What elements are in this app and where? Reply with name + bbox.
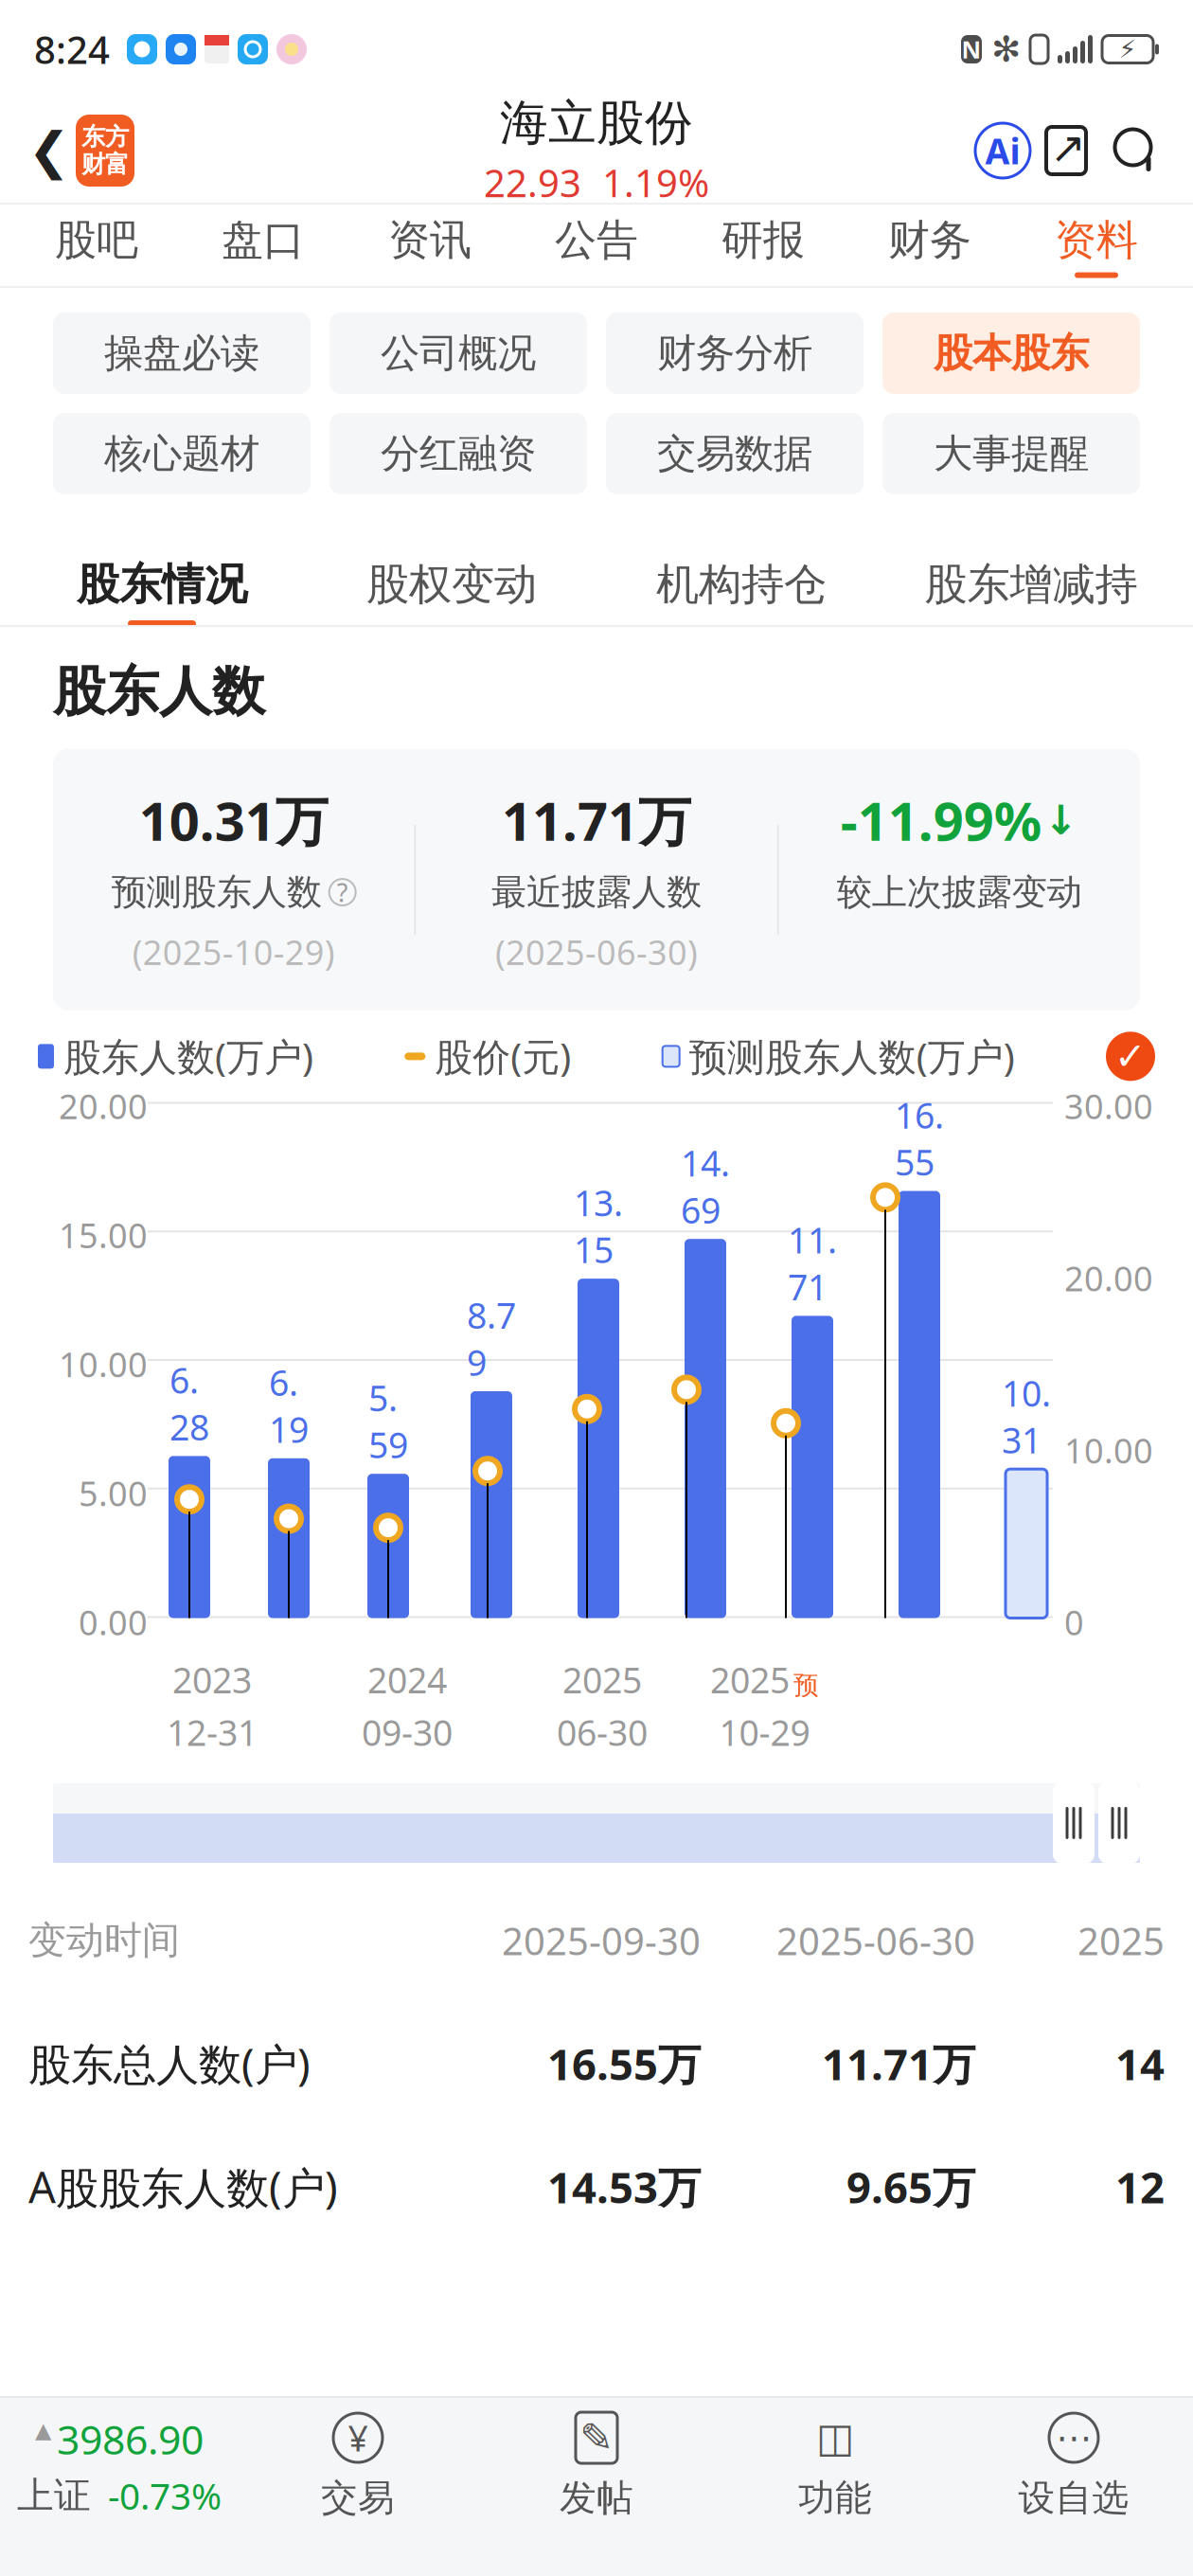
button[interactable]: 盘口	[180, 205, 347, 288]
staticText: 2025-06-30	[776, 1915, 975, 1966]
button[interactable]: 调整区间	[1098, 1782, 1140, 1864]
staticText: 10.31	[1002, 1369, 1051, 1463]
staticText: 30.00	[1064, 1083, 1153, 1129]
staticText: (2025-10-29)	[132, 929, 335, 974]
staticText: 14.53万	[547, 2158, 701, 2215]
staticText: ⚡︎	[1119, 35, 1137, 64]
staticText: 0	[1064, 1599, 1084, 1645]
button[interactable]: 资料	[1013, 205, 1180, 288]
staticText: 09-30	[362, 1709, 453, 1756]
button[interactable]: 大事提醒	[882, 413, 1140, 494]
staticText: 股东总人数(户)	[28, 2035, 311, 2092]
staticText: 11.71万	[502, 785, 691, 855]
staticText: 股东增减持	[925, 558, 1138, 611]
button[interactable]: 股东情况	[17, 521, 307, 627]
button[interactable]: 操盘必读	[53, 313, 311, 394]
button[interactable]: 股本股东	[882, 313, 1140, 394]
staticText: ✓	[1114, 1035, 1147, 1078]
staticText: 预	[793, 1670, 819, 1701]
button[interactable]: 东方财富	[76, 115, 134, 187]
button[interactable]: 研报	[680, 205, 846, 288]
staticText: 2025	[1077, 1915, 1165, 1966]
staticText: 上证	[17, 2473, 91, 2518]
button[interactable]: 分享	[1030, 110, 1102, 191]
button[interactable]: 机构持仓	[596, 521, 886, 627]
staticText: 股权变动	[366, 558, 537, 611]
staticText: ↗	[1050, 123, 1086, 172]
button[interactable]: 公告	[513, 205, 680, 288]
staticText: 11.71万	[822, 2035, 975, 2092]
staticText: 13.15	[574, 1179, 623, 1273]
button[interactable]: 调整区间	[1053, 1782, 1095, 1864]
staticText: 22.93	[484, 157, 581, 208]
button[interactable]: 股东增减持	[886, 521, 1176, 627]
staticText: 9.65万	[846, 2158, 975, 2215]
staticText: 6.28	[169, 1356, 209, 1450]
staticText: 12-31	[167, 1709, 258, 1756]
button[interactable]: 股吧	[13, 205, 180, 288]
staticText: 机构持仓	[656, 558, 827, 611]
button[interactable]: 上证指数	[0, 2412, 239, 2520]
staticText: 财务	[888, 215, 971, 266]
staticText: 公告	[555, 215, 638, 266]
button[interactable]: 财务分析	[606, 313, 864, 394]
button[interactable]: 股权变动	[307, 521, 596, 627]
staticText: ↓	[1044, 797, 1078, 843]
button[interactable]: 交易数据	[606, 413, 864, 494]
staticText: 东方	[81, 122, 129, 152]
staticText: 功能	[798, 2476, 872, 2521]
button[interactable]: 核心题材	[53, 413, 311, 494]
staticText: 预测股东人数(万户)	[689, 1031, 1015, 1081]
staticText: 设自选	[1018, 2476, 1129, 2521]
staticText: ¥	[348, 2414, 368, 2461]
button[interactable]: 返回	[23, 110, 76, 191]
button[interactable]: 搜索	[1102, 110, 1170, 191]
button[interactable]: ✎	[477, 2411, 716, 2521]
button[interactable]: ¥	[239, 2411, 477, 2521]
staticText: ?	[337, 875, 348, 909]
staticText: ⋯	[1056, 2418, 1091, 2458]
staticText: 交易	[321, 2476, 395, 2521]
staticText: 大事提醒	[934, 430, 1089, 478]
staticText: 预测股东人数	[111, 870, 322, 914]
staticText: ✻	[991, 29, 1021, 69]
staticText: 股东人数(万户)	[63, 1031, 313, 1081]
staticText: Ai	[985, 127, 1020, 174]
staticText: 最近披露人数	[491, 870, 702, 914]
staticText: N	[962, 33, 981, 65]
staticText: 11.71	[788, 1216, 837, 1310]
staticText: (2025-06-30)	[495, 929, 698, 974]
staticText: ◫	[816, 2415, 854, 2461]
staticText: 10.31万	[139, 785, 328, 855]
button[interactable]: AI 助手	[975, 123, 1030, 178]
staticText: 研报	[721, 215, 805, 266]
staticText: ▲	[35, 2418, 51, 2442]
staticText: 14	[1115, 2035, 1165, 2092]
staticText: 财务分析	[657, 329, 812, 377]
button[interactable]: ◫	[716, 2411, 954, 2521]
staticText: 较上次披露变动	[837, 870, 1082, 914]
staticText: 财富	[81, 150, 129, 179]
button[interactable]: 确认	[1106, 1032, 1155, 1081]
staticText: 2024	[367, 1656, 447, 1703]
staticText: 5.00	[79, 1470, 148, 1516]
staticText: 资讯	[388, 215, 472, 266]
button[interactable]: 财务	[846, 205, 1013, 288]
button[interactable]: 资讯	[347, 205, 513, 288]
staticText: A股股东人数(户)	[28, 2158, 338, 2215]
staticText: 公司概况	[381, 329, 536, 377]
staticText: 股价(元)	[435, 1031, 571, 1081]
staticText: 8.79	[467, 1292, 516, 1386]
staticText: ✎	[579, 2415, 614, 2461]
staticText: 16.55万	[547, 2035, 701, 2092]
staticText: 2023	[172, 1656, 252, 1703]
button[interactable]: 分红融资	[329, 413, 587, 494]
button[interactable]: 公司概况	[329, 313, 587, 394]
button[interactable]: ⋯	[954, 2411, 1193, 2521]
staticText: 16.55	[895, 1091, 944, 1185]
staticText: 资料	[1055, 215, 1138, 266]
staticText: 变动时间	[28, 1917, 180, 1964]
staticText: 股本股东	[934, 329, 1089, 377]
staticText: 10.00	[59, 1341, 148, 1387]
